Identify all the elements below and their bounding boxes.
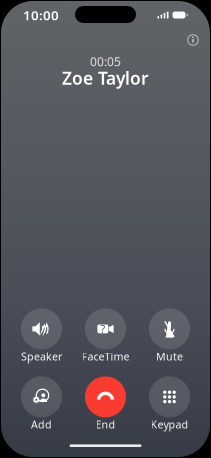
button[interactable]: End <box>73 376 137 429</box>
staticText: Keypad <box>150 417 188 431</box>
staticText: Speaker <box>21 349 62 363</box>
staticText: Add <box>31 417 52 431</box>
button[interactable]: Keypad <box>137 376 201 429</box>
staticText: 10:00 <box>23 6 59 24</box>
staticText: ? <box>100 322 105 336</box>
button[interactable]: Add <box>9 376 73 429</box>
button[interactable]: ? <box>73 308 137 361</box>
staticText: End <box>95 417 115 431</box>
staticText: Zoe Taylor <box>62 66 149 89</box>
staticText: Mute <box>156 349 183 363</box>
button[interactable]: Call info <box>182 29 204 51</box>
button[interactable]: Speaker <box>9 308 73 361</box>
staticText: 00:05 <box>90 53 121 69</box>
staticText: FaceTime <box>81 349 129 363</box>
button[interactable]: Mute <box>137 308 201 361</box>
